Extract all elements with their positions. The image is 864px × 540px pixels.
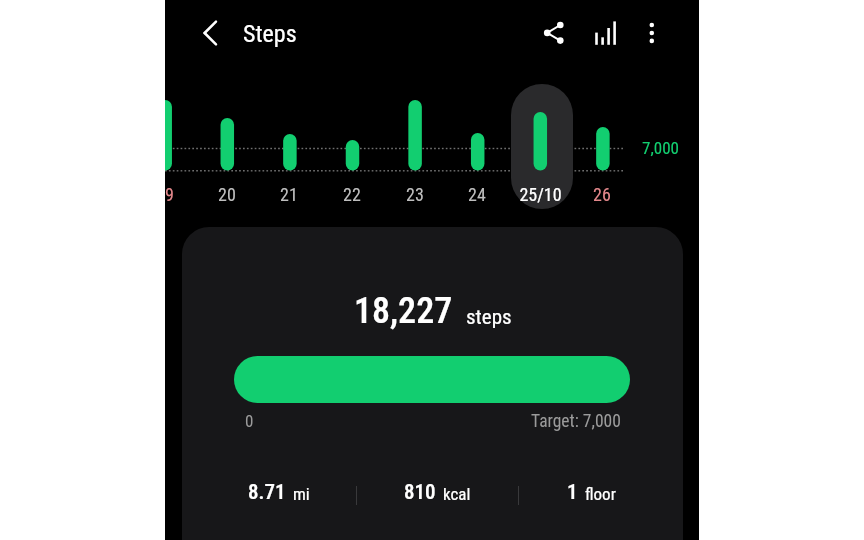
button[interactable]: Steps xyxy=(243,6,297,62)
staticText: 26 xyxy=(593,184,611,205)
staticText: 20 xyxy=(218,184,236,205)
staticText: 23 xyxy=(406,184,424,205)
staticText: mi xyxy=(293,484,310,504)
button[interactable]: More options xyxy=(628,9,676,57)
button[interactable]: Back xyxy=(186,9,234,57)
staticText: 22 xyxy=(343,184,361,205)
button[interactable] xyxy=(234,356,630,403)
button[interactable]: 8.71 xyxy=(202,472,356,512)
staticText: 25/10 xyxy=(519,184,562,205)
staticText: steps xyxy=(466,305,512,330)
staticText: 0 xyxy=(245,411,254,431)
staticText: Steps xyxy=(243,20,297,48)
button[interactable] xyxy=(511,84,573,209)
button[interactable]: 1 xyxy=(519,472,663,512)
staticText: Target: 7,000 xyxy=(531,411,621,432)
staticText: floor xyxy=(585,484,616,504)
staticText: 19 xyxy=(165,184,174,205)
staticText: 1 xyxy=(567,480,578,505)
staticText: 810 xyxy=(404,480,436,505)
staticText: 8.71 xyxy=(248,480,286,505)
button[interactable]: Share xyxy=(530,9,578,57)
button[interactable]: 810 xyxy=(357,472,518,512)
staticText: 7,000 xyxy=(642,138,679,158)
staticText: 24 xyxy=(468,184,486,205)
staticText: 21 xyxy=(280,184,298,205)
staticText: kcal xyxy=(443,484,471,504)
button[interactable]: Charts xyxy=(582,9,630,57)
staticText: 18,227 xyxy=(354,290,453,332)
